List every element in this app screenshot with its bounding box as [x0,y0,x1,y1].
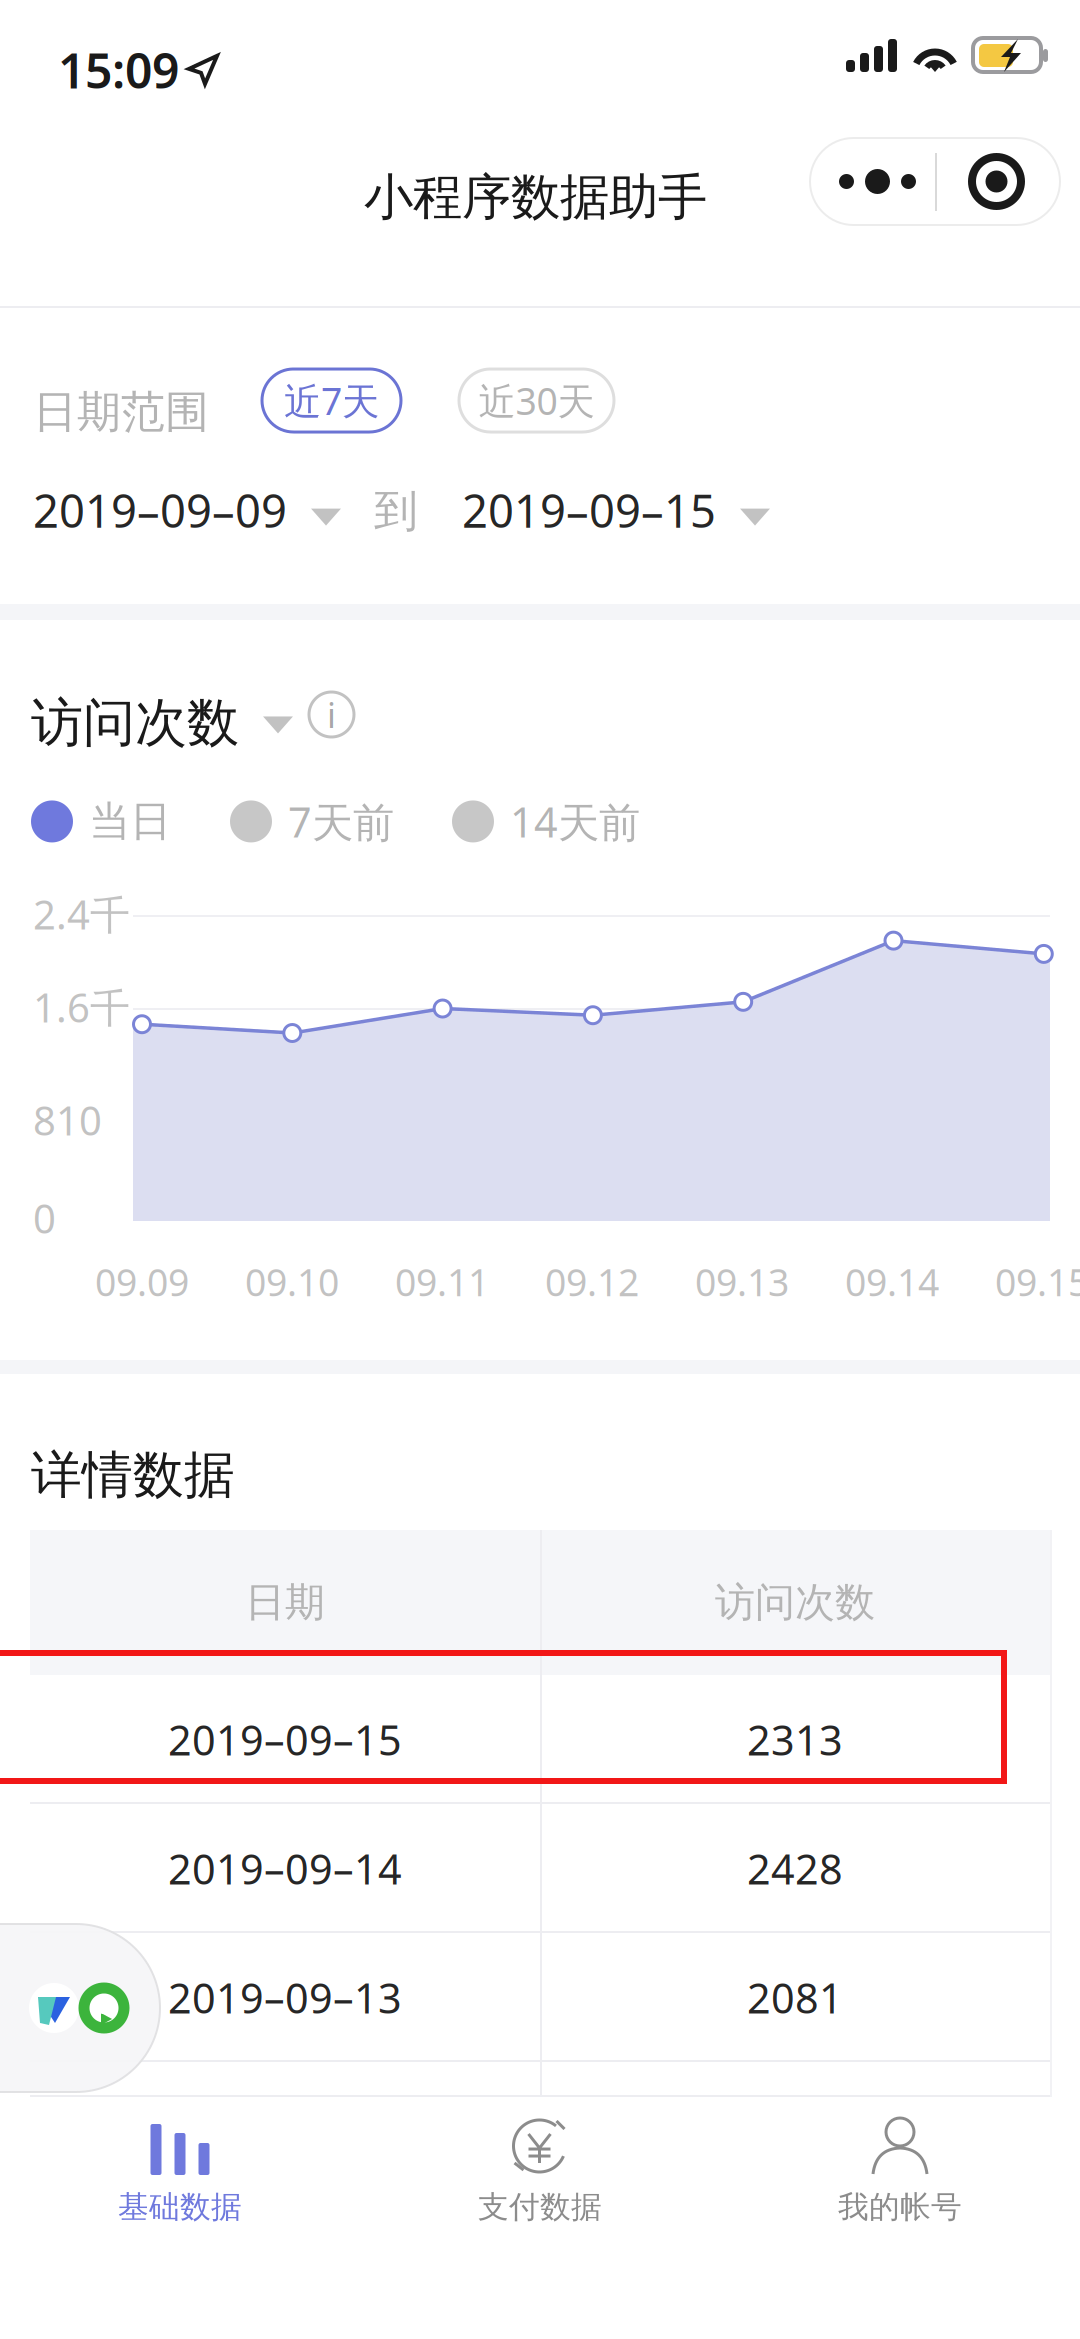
staticText: 日期范围 [33,385,209,439]
staticText: 7天前 [288,794,394,849]
button[interactable]: 2019–09–14 [30,1804,1050,1933]
staticText: 访问次数 [715,1578,875,1627]
staticText: 到 [374,484,418,538]
staticText: 支付数据 [478,2188,602,2226]
staticText: i [327,691,336,737]
staticText: 近7天 [284,376,379,425]
staticText: 2019–09–15 [462,480,716,540]
staticText: 近30天 [478,376,594,425]
staticText: 1.6千 [33,980,130,1033]
staticText: 2081 [747,1970,843,2025]
staticText: 09.14 [845,1257,939,1307]
button[interactable]: 2019–09–15 [462,480,770,540]
button[interactable]: 访问次数 [31,691,293,755]
button[interactable]: 2019–09–09 [33,480,341,540]
button[interactable]: 基础数据 [0,2100,360,2339]
staticText: 09.15 [995,1257,1080,1307]
staticText: 2.4千 [33,887,130,940]
staticText: 09.13 [695,1257,789,1307]
button[interactable]: Mini program launcher [0,1924,160,2092]
staticText: 810 [33,1093,102,1146]
staticText: 小程序数据助手 [364,167,707,228]
staticText: 14天前 [510,794,640,849]
staticText: 09.10 [245,1257,339,1307]
staticText: 2313 [747,1712,843,1767]
staticText: 09.09 [95,1257,189,1307]
button[interactable]: 近7天 [262,369,401,432]
staticText: 2019–09–13 [168,1970,402,2025]
staticText: 当日 [89,796,171,847]
staticText: 日期 [245,1578,325,1627]
staticText: 基础数据 [118,2188,242,2226]
button[interactable]: 近30天 [459,369,614,432]
staticText: 2019–09–14 [168,1841,402,1896]
staticText: 09.12 [545,1257,639,1307]
staticText: 09.11 [395,1257,489,1307]
button[interactable]: 2019–09–13 [30,1933,1050,2062]
button[interactable]: More options [810,138,1060,225]
button[interactable]: Info [309,692,354,737]
staticText: 2019–09–15 [168,1712,402,1767]
staticText: 2019–09–09 [33,480,287,540]
staticText: 访问次数 [31,691,239,755]
button[interactable]: 支付数据 [360,2100,720,2339]
button[interactable]: 我的帐号 [720,2100,1080,2339]
staticText: 2428 [747,1841,843,1896]
staticText: 我的帐号 [838,2188,962,2226]
staticText: 15:09 [58,38,179,102]
staticText: 详情数据 [31,1444,235,1506]
staticText: 0 [33,1191,56,1244]
button[interactable]: 2019–09–15 [30,1675,1050,1804]
